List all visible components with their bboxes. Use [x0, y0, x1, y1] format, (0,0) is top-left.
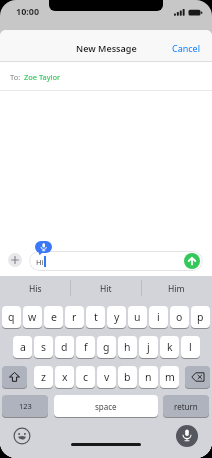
staticText: a [20, 340, 26, 354]
button[interactable]: h [118, 336, 137, 358]
button[interactable]: m [160, 366, 179, 388]
staticText: h [124, 340, 131, 354]
staticText: Cancel [172, 42, 201, 54]
staticText: To: [10, 72, 21, 82]
staticText: d [61, 340, 68, 354]
staticText: j [147, 340, 150, 354]
button[interactable]: k [160, 336, 179, 358]
button[interactable]: c [76, 366, 95, 388]
button[interactable]: v [97, 366, 116, 388]
staticText: m [165, 370, 175, 384]
staticText: Him [168, 283, 185, 295]
staticText: return [174, 401, 198, 412]
staticText: i [157, 310, 160, 324]
button[interactable]: f [76, 336, 95, 358]
staticText: s [41, 340, 47, 354]
button[interactable] [176, 425, 198, 447]
staticText: c [83, 370, 89, 384]
staticText: His [29, 283, 42, 295]
button[interactable]: Him [141, 276, 212, 301]
staticText: k [167, 340, 173, 354]
button[interactable]: e [44, 306, 63, 328]
button[interactable]: u [128, 306, 147, 328]
staticText: b [124, 370, 131, 384]
staticText: o [176, 310, 183, 324]
button[interactable]: r [65, 306, 84, 328]
button[interactable] [184, 253, 200, 269]
button[interactable]: n [139, 366, 158, 388]
staticText: New Message [76, 42, 137, 54]
staticText: 123 [19, 401, 32, 411]
button[interactable] [185, 366, 210, 388]
staticText: space [95, 401, 117, 412]
staticText: x [62, 370, 68, 384]
button[interactable]: 123 [2, 395, 48, 417]
button[interactable]: return [163, 395, 209, 417]
button[interactable]: d [55, 336, 74, 358]
staticText: z [41, 370, 46, 384]
button[interactable] [13, 427, 31, 445]
button[interactable]: a [13, 336, 32, 358]
button[interactable]: g [97, 336, 116, 358]
button[interactable]: l [181, 336, 200, 358]
button[interactable] [8, 253, 22, 267]
button[interactable]: o [170, 306, 189, 328]
button[interactable]: Hit [70, 276, 141, 301]
button[interactable]: q [2, 306, 21, 328]
staticText: r [72, 310, 77, 324]
staticText: n [145, 370, 152, 384]
staticText: y [114, 310, 120, 324]
staticText: 10:00 [16, 5, 40, 17]
staticText: Hi [36, 257, 44, 267]
staticText: p [197, 310, 204, 324]
button[interactable]: b [118, 366, 137, 388]
button[interactable]: To: [0, 63, 212, 91]
button[interactable]: Hi [29, 251, 203, 271]
staticText: u [134, 310, 141, 324]
button[interactable]: y [107, 306, 126, 328]
staticText: e [51, 310, 57, 324]
button[interactable]: His [0, 276, 70, 301]
button[interactable]: t [86, 306, 105, 328]
staticText: w [28, 310, 37, 324]
button[interactable] [2, 366, 27, 388]
button[interactable]: space [54, 395, 158, 417]
staticText: Zoe Taylor [24, 72, 61, 82]
button[interactable]: Cancel [172, 42, 212, 54]
button[interactable]: s [34, 336, 53, 358]
button[interactable]: i [149, 306, 168, 328]
staticText: q [8, 310, 15, 324]
button[interactable]: z [34, 366, 53, 388]
button[interactable]: x [55, 366, 74, 388]
staticText: f [84, 340, 88, 354]
button[interactable]: p [191, 306, 210, 328]
button[interactable]: j [139, 336, 158, 358]
button[interactable]: w [23, 306, 42, 328]
staticText: v [104, 370, 110, 384]
staticText: l [189, 340, 192, 354]
staticText: g [103, 340, 110, 354]
staticText: Hit [100, 283, 112, 295]
staticText: t [94, 310, 98, 324]
